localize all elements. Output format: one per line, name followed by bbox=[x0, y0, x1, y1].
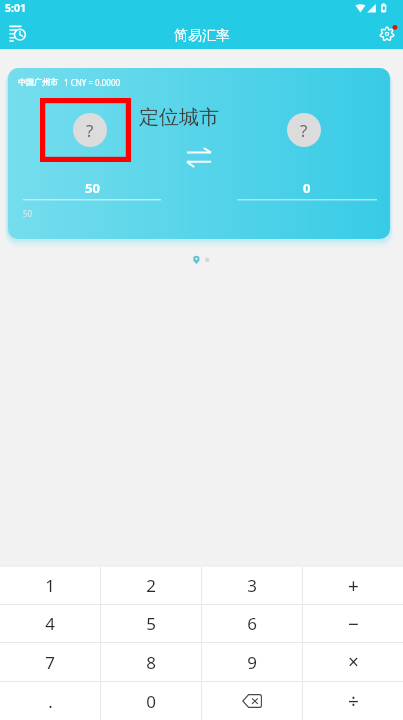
staticText: 3 bbox=[247, 574, 257, 597]
button[interactable]: ? bbox=[287, 113, 321, 147]
staticText: 9 bbox=[247, 651, 257, 674]
staticText: ? bbox=[300, 119, 308, 142]
button[interactable]: Backspace bbox=[202, 682, 302, 720]
staticText: 5 bbox=[146, 612, 156, 635]
button[interactable]: 1 bbox=[0, 567, 100, 604]
staticText: 7 bbox=[45, 651, 55, 674]
staticText: 0 bbox=[303, 179, 311, 197]
staticText: × bbox=[348, 649, 359, 675]
button[interactable]: 2 bbox=[101, 567, 201, 604]
staticText: 简易汇率 bbox=[174, 27, 230, 45]
button[interactable]: History bbox=[2, 20, 32, 47]
staticText: 50 bbox=[85, 179, 100, 197]
staticText: 50 bbox=[23, 208, 33, 219]
button[interactable]: − bbox=[303, 605, 403, 642]
staticText: 4 bbox=[45, 612, 55, 635]
other: Backspace bbox=[242, 694, 262, 708]
staticText: 2 bbox=[146, 574, 156, 597]
button[interactable]: 3 bbox=[202, 567, 302, 604]
staticText: 8 bbox=[146, 651, 156, 674]
button[interactable]: ? bbox=[40, 98, 131, 162]
button[interactable]: 中国广州市 bbox=[8, 68, 390, 239]
staticText: . bbox=[48, 690, 53, 713]
staticText: 中国广州市 bbox=[18, 77, 58, 87]
staticText: ? bbox=[86, 119, 94, 142]
button[interactable]: 7 bbox=[0, 643, 100, 681]
staticText: 1 CNY = 0.0000 bbox=[64, 77, 121, 88]
staticText: 1 bbox=[45, 574, 55, 597]
staticText: + bbox=[348, 573, 359, 599]
button[interactable]: 8 bbox=[101, 643, 201, 681]
button[interactable]: . bbox=[0, 682, 100, 720]
staticText: ÷ bbox=[348, 688, 359, 714]
button[interactable]: ÷ bbox=[303, 682, 403, 720]
button[interactable]: 5 bbox=[101, 605, 201, 642]
button[interactable]: Settings bbox=[373, 20, 403, 47]
button[interactable]: + bbox=[303, 567, 403, 604]
button[interactable]: 9 bbox=[202, 643, 302, 681]
button[interactable]: × bbox=[303, 643, 403, 681]
staticText: 6 bbox=[247, 612, 257, 635]
button[interactable]: Swap bbox=[187, 148, 211, 167]
button[interactable]: 4 bbox=[0, 605, 100, 642]
staticText: 定位城市 bbox=[139, 105, 219, 130]
staticText: − bbox=[348, 611, 359, 637]
button[interactable]: 6 bbox=[202, 605, 302, 642]
staticText: 0 bbox=[146, 690, 156, 713]
button[interactable]: 0 bbox=[101, 682, 201, 720]
staticText: 5:01 bbox=[5, 1, 26, 15]
